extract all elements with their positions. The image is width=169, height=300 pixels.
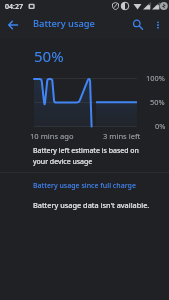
staticText: Battery usage xyxy=(33,17,95,30)
staticText: 50% xyxy=(150,97,165,107)
button[interactable]: More options xyxy=(147,14,169,36)
staticText: Battery usage data isn't available. xyxy=(33,200,150,210)
staticText: 100% xyxy=(146,73,165,83)
staticText: 10 mins ago xyxy=(30,131,74,141)
staticText: 0% xyxy=(155,121,166,131)
button[interactable]: Back xyxy=(2,14,24,36)
button[interactable]: Search xyxy=(127,14,149,36)
staticText: Battery left estimate is based on your d… xyxy=(33,146,147,166)
staticText: 3 mins left xyxy=(103,131,141,141)
staticText: 04:27 xyxy=(5,2,23,12)
button[interactable]: Battery usage since full charge xyxy=(0,176,169,196)
staticText: 50% xyxy=(34,46,64,66)
staticText: Battery usage since full charge xyxy=(33,181,136,191)
